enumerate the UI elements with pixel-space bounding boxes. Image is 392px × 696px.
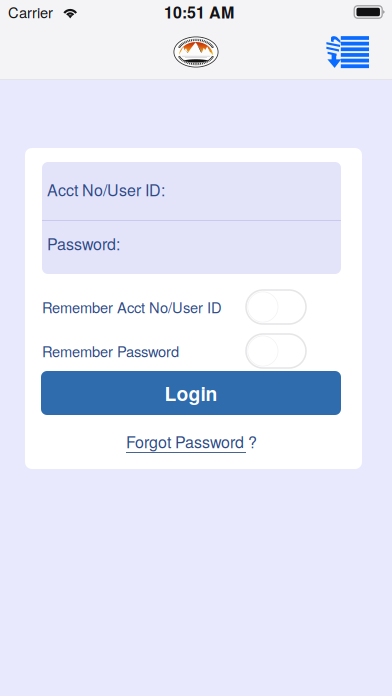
button[interactable]: Remember Acct No/User ID bbox=[42, 290, 306, 324]
staticText: Remember Password bbox=[42, 340, 179, 361]
button[interactable]: Menu bbox=[326, 35, 369, 68]
button[interactable]: Remember Password bbox=[42, 334, 306, 368]
button[interactable]: Brigantine Beach Tax Office bbox=[173, 36, 218, 67]
staticText: Carrier bbox=[8, 1, 53, 22]
staticText: Forgot Password ? bbox=[126, 430, 257, 453]
staticText: Acct No/User ID: bbox=[47, 178, 165, 201]
staticText: Login bbox=[164, 379, 217, 407]
button[interactable]: Forgot Password ? bbox=[126, 429, 266, 457]
button[interactable]: Login bbox=[41, 371, 341, 415]
staticText: Password: bbox=[47, 232, 120, 255]
staticText: 10:51 AM bbox=[164, 0, 234, 23]
staticText: Remember Acct No/User ID bbox=[42, 296, 222, 317]
